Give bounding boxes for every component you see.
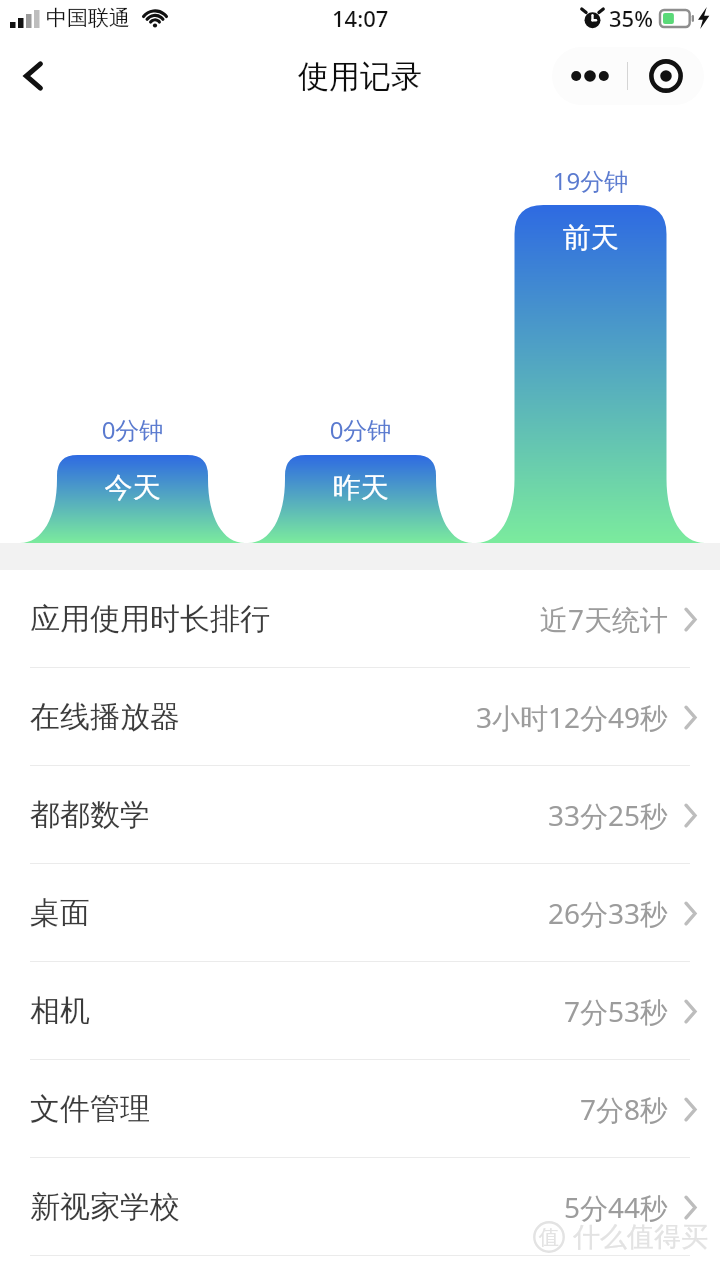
staticText: 0分钟 <box>20 413 245 446</box>
staticText: 值 <box>539 1225 559 1250</box>
staticText: 前天 <box>476 220 705 255</box>
staticText: 0分钟 <box>248 413 473 446</box>
staticText: 3小时12分49秒 <box>476 698 669 736</box>
staticText: 什么值得买 <box>573 1220 708 1254</box>
staticText: 新视家学校 <box>30 1188 180 1226</box>
button[interactable]: 前天 <box>476 116 705 543</box>
button[interactable]: Close <box>628 47 704 105</box>
button[interactable]: 都都数学 <box>0 766 720 863</box>
button[interactable]: 在线播放器 <box>0 668 720 765</box>
staticText: 14:07 <box>332 3 389 33</box>
staticText: 中国联通 <box>46 5 130 31</box>
staticText: 应用使用时长排行 <box>30 600 270 638</box>
button[interactable]: 文件管理 <box>0 1060 720 1157</box>
staticText: 昨天 <box>248 470 473 505</box>
staticText: 桌面 <box>30 894 90 932</box>
staticText: 7分8秒 <box>580 1090 669 1128</box>
staticText: 近7天统计 <box>540 600 669 638</box>
staticText: 7分53秒 <box>564 992 669 1030</box>
staticText: 26分33秒 <box>548 894 669 932</box>
staticText: 5分44秒 <box>564 1188 669 1226</box>
button[interactable]: 今天 <box>20 116 245 543</box>
staticText: 使用记录 <box>298 57 422 96</box>
button[interactable]: Back <box>4 46 64 106</box>
staticText: 文件管理 <box>30 1090 150 1128</box>
button[interactable]: 新视家学校 <box>0 1158 720 1255</box>
button[interactable]: 昨天 <box>248 116 473 543</box>
staticText: 在线播放器 <box>30 698 180 736</box>
staticText: 35% <box>609 3 653 33</box>
staticText: 都都数学 <box>30 796 150 834</box>
button[interactable]: 桌面 <box>0 864 720 961</box>
button[interactable]: 相机 <box>0 962 720 1059</box>
staticText: 33分25秒 <box>548 796 669 834</box>
button[interactable]: 应用使用时长排行 <box>0 570 720 667</box>
staticText: 19分钟 <box>476 164 705 197</box>
staticText: 相机 <box>30 992 90 1030</box>
staticText: 今天 <box>20 470 245 505</box>
button[interactable]: More options <box>552 47 627 105</box>
